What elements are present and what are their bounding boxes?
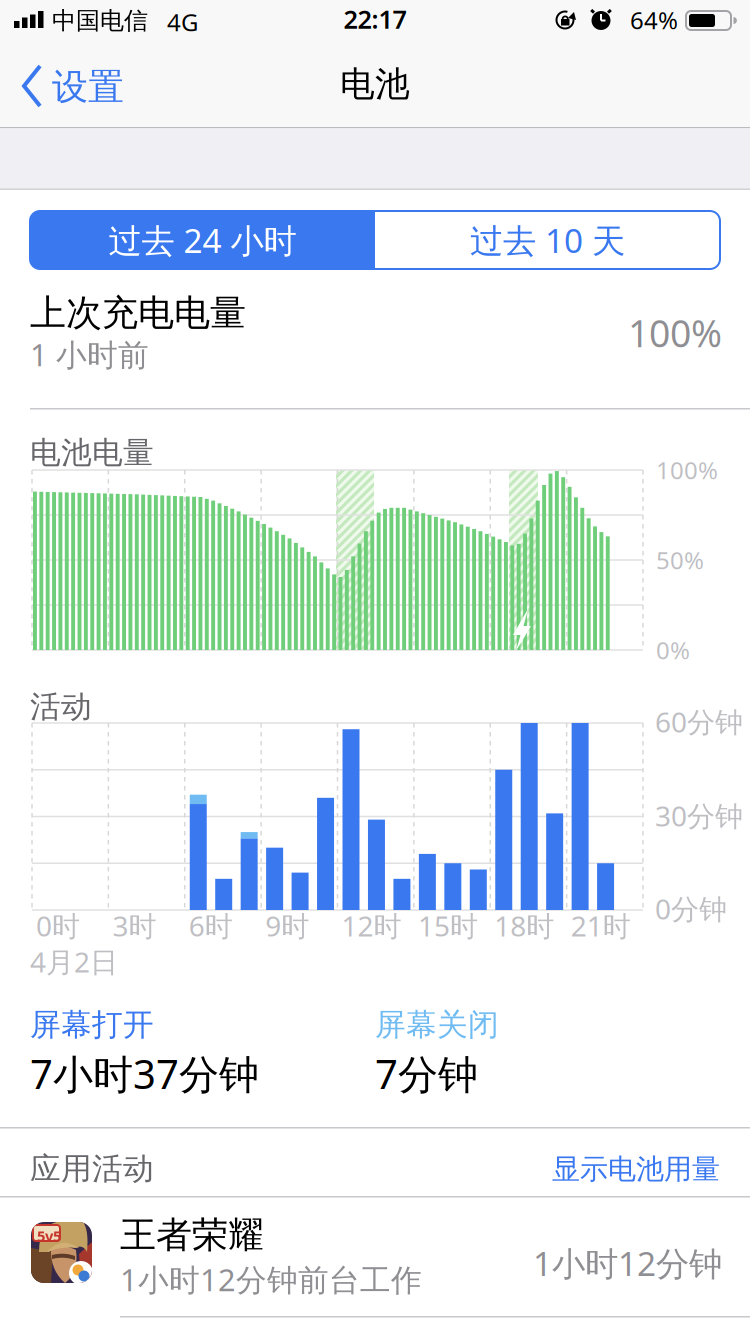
staticText: 屏幕打开	[30, 1006, 154, 1044]
staticText: 7分钟	[375, 1047, 478, 1100]
staticText: 64%	[630, 4, 678, 36]
staticText: 王者荣耀	[120, 1213, 264, 1257]
staticText: 6时	[189, 907, 233, 944]
staticText: 3时	[112, 907, 156, 944]
staticText: 应用活动	[30, 1150, 154, 1188]
staticText: 50%	[656, 544, 704, 576]
staticText: 电池	[340, 63, 410, 106]
staticText: 7小时37分钟	[30, 1047, 259, 1100]
staticText: 1小时12分钟	[533, 1241, 722, 1285]
button[interactable]: 5v5	[0, 1197, 750, 1317]
button[interactable]: 过去 24 小时	[30, 211, 375, 269]
staticText: 21时	[571, 907, 631, 944]
staticText: 屏幕关闭	[375, 1006, 499, 1044]
staticText: 过去 24 小时	[108, 218, 296, 262]
staticText: 30分钟	[655, 797, 743, 834]
staticText: 4月2日	[30, 943, 118, 980]
staticText: 15时	[418, 907, 478, 944]
staticText: 100%	[656, 454, 718, 486]
staticText: 4G	[167, 6, 198, 38]
staticText: 显示电池用量	[552, 1152, 720, 1186]
staticText: 18时	[494, 907, 554, 944]
staticText: 中国电信	[52, 6, 148, 35]
staticText: 5v5	[37, 1226, 61, 1245]
staticText: 设置	[52, 65, 124, 109]
button[interactable]: 设置	[18, 63, 128, 109]
staticText: 0分钟	[655, 890, 727, 927]
staticText: 1小时12分钟前台工作	[120, 1259, 422, 1300]
staticText: 22:17	[343, 2, 406, 36]
staticText: 1 小时前	[30, 334, 149, 375]
staticText: 0%	[656, 634, 690, 666]
staticText: 9时	[265, 907, 309, 944]
staticText: 60分钟	[655, 703, 743, 740]
staticText: 电池电量	[30, 434, 154, 472]
staticText: 过去 10 天	[470, 218, 625, 262]
button[interactable]: 过去 10 天	[375, 211, 720, 269]
staticText: 上次充电电量	[30, 291, 246, 335]
staticText: 活动	[30, 688, 92, 726]
staticText: 100%	[628, 308, 722, 358]
staticText: 12时	[341, 907, 401, 944]
staticText: 0时	[36, 907, 80, 944]
button[interactable]: 显示电池用量	[460, 1152, 720, 1186]
